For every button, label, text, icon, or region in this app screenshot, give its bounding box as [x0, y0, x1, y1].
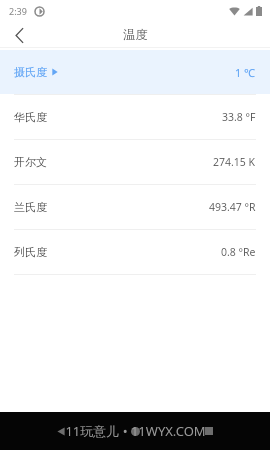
staticText: 2:39	[9, 5, 27, 17]
button[interactable]: 摄氏度	[0, 50, 270, 94]
staticText: 274.15 K	[213, 155, 256, 169]
button[interactable]: 开尔文	[0, 140, 270, 184]
staticText: 摄氏度	[14, 65, 47, 79]
button[interactable]: Recent apps	[196, 418, 222, 444]
staticText: 11玩意儿 • 11WYX.COM	[65, 422, 206, 440]
button[interactable]: Back	[0, 22, 38, 48]
staticText: 兰氏度	[14, 200, 47, 214]
staticText: 温度	[123, 27, 148, 43]
staticText: 华氏度	[14, 110, 47, 124]
staticText: 33.8 °F	[222, 110, 256, 124]
button[interactable]: 华氏度	[0, 95, 270, 139]
staticText: 0.8 °Re	[221, 245, 256, 259]
button[interactable]: Home	[122, 418, 148, 444]
staticText: 开尔文	[14, 155, 47, 169]
button[interactable]: Back	[48, 418, 74, 444]
button[interactable]: 兰氏度	[0, 185, 270, 229]
staticText: 列氏度	[14, 245, 47, 259]
staticText: 493.47 °R	[209, 200, 256, 214]
button[interactable]: 列氏度	[0, 230, 270, 274]
staticText: 1 ℃	[235, 65, 256, 80]
